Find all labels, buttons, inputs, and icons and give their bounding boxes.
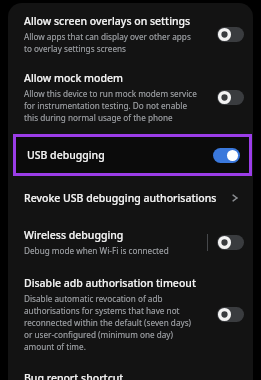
staticText: this during normal usage of the phone <box>24 112 173 123</box>
staticText: USB debugging <box>27 148 213 162</box>
button[interactable]: Allow mock modem <box>8 69 253 125</box>
button[interactable]: Off <box>217 90 244 105</box>
button[interactable]: Off <box>217 27 244 42</box>
staticText: reconnected within the default (seven da… <box>24 317 192 328</box>
staticText: to overlay settings screens <box>24 43 126 54</box>
staticText: Allow screen overlays on settings <box>24 14 191 28</box>
staticText: Allow mock modem <box>24 71 123 85</box>
staticText: Bug report shortcut <box>24 371 217 380</box>
staticText: Wireless debugging <box>24 228 124 242</box>
staticText: authorisations for systems that have not <box>24 305 180 316</box>
button[interactable]: Off <box>217 235 244 250</box>
button[interactable]: Bug report shortcut <box>8 368 253 380</box>
button[interactable]: Allow screen overlays on settings <box>8 12 253 56</box>
button[interactable]: Off <box>217 307 244 322</box>
staticText: Revoke USB debugging authorisations <box>24 191 229 205</box>
button[interactable]: On <box>213 148 240 163</box>
staticText: or user-configured (minimum one day) <box>24 329 173 340</box>
staticText: Allow apps that can display over other a… <box>24 31 191 42</box>
staticText: Disable automatic revocation of adb <box>24 293 163 304</box>
button[interactable]: Wireless debugging <box>8 223 253 261</box>
staticText: Debug mode when Wi-Fi is connected <box>24 245 169 256</box>
staticText: for instrumentation testing. Do not enab… <box>24 100 188 111</box>
button[interactable]: Disable adb authorisation timeout <box>8 274 253 354</box>
staticText: Disable adb authorisation timeout <box>24 276 196 290</box>
staticText: Allow this device to run mock modem serv… <box>24 88 197 99</box>
staticText: amount of time. <box>24 341 86 352</box>
button[interactable]: Revoke USB debugging authorisations <box>8 186 253 210</box>
button[interactable]: Open <box>229 192 241 204</box>
button[interactable]: USB debugging <box>16 137 249 173</box>
